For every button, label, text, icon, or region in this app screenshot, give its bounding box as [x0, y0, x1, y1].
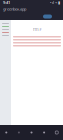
staticText: •ıl ⌁ ▮	[50, 0, 60, 5]
staticText: 9:41	[3, 0, 10, 5]
staticText: greenbox.app	[3, 6, 26, 12]
staticText: TITLE	[32, 27, 41, 32]
